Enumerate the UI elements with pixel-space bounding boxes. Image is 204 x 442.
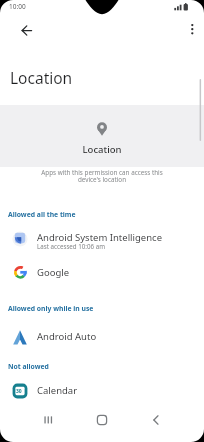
staticText: Apps with this permission can access thi… [0,168,204,184]
staticText: Android System Intelligence [37,231,163,244]
staticText: Last accessed 10:06 am [37,242,105,250]
staticText: Calendar [37,384,78,397]
button[interactable] [0,378,204,408]
staticText: Allowed all the time [8,210,76,219]
button[interactable] [83,406,121,436]
button[interactable] [0,324,204,354]
button[interactable] [0,258,204,288]
button[interactable] [0,226,204,256]
staticText: Not allowed [8,362,49,371]
button[interactable] [182,18,202,41]
staticText: Allowed only while in use [8,304,94,313]
button[interactable] [14,19,40,42]
staticText: Location [0,143,204,156]
staticText: Google [37,266,70,279]
button[interactable] [30,406,68,436]
staticText: Location [10,67,73,88]
staticText: 30 [16,388,22,395]
staticText: Android Auto [37,330,97,343]
staticText: 10:00 [9,2,26,11]
button[interactable] [137,406,175,436]
